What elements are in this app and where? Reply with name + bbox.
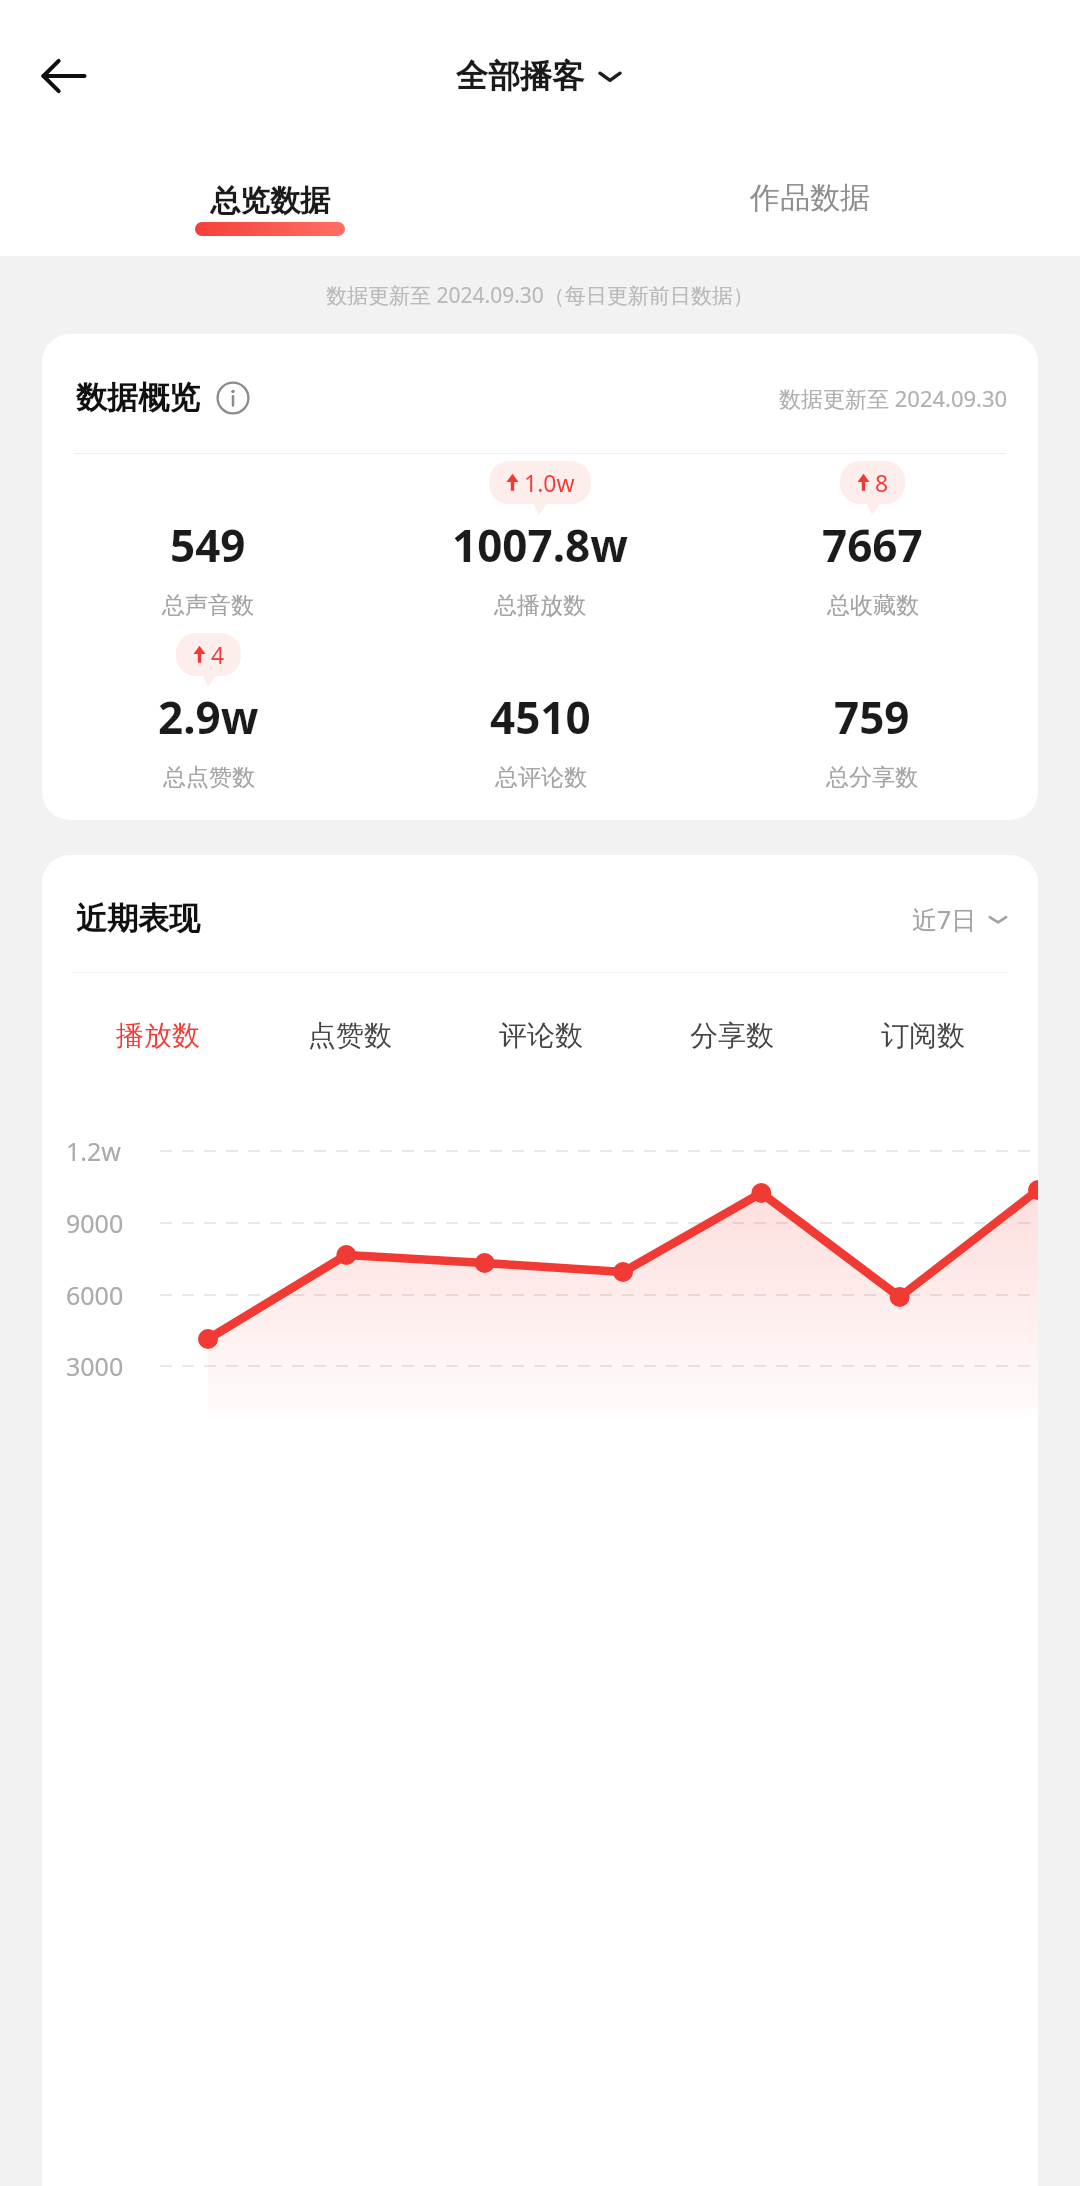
- staticText: 总点赞数: [163, 763, 255, 792]
- staticText: 数据概览: [76, 378, 200, 417]
- button[interactable]: 作品数据: [540, 152, 1080, 256]
- button[interactable]: 订阅数: [830, 997, 1015, 1073]
- staticText: 549: [170, 515, 246, 575]
- button[interactable]: Back: [26, 38, 102, 114]
- staticText: 4510: [490, 687, 591, 747]
- staticText: 1007.8w: [452, 515, 628, 575]
- staticText: 数据更新至 2024.09.30: [779, 383, 1008, 413]
- button[interactable]: Info: [216, 381, 250, 415]
- staticText: 759: [834, 687, 910, 747]
- staticText: 近期表现: [76, 899, 200, 938]
- button[interactable]: 评论数: [448, 997, 633, 1073]
- staticText: 4: [211, 639, 225, 670]
- staticText: 1.2w: [66, 1134, 121, 1168]
- staticText: 9000: [66, 1206, 124, 1240]
- staticText: 全部播客: [456, 56, 584, 96]
- staticText: 总分享数: [826, 763, 918, 792]
- staticText: 订阅数: [881, 1018, 965, 1053]
- button[interactable]: 点赞数: [257, 997, 442, 1073]
- staticText: 近7日: [912, 902, 977, 936]
- button[interactable]: 全部播客: [456, 56, 624, 96]
- button[interactable]: 近7日: [912, 902, 1010, 936]
- button[interactable]: 播放数: [65, 997, 251, 1073]
- staticText: 总览数据: [210, 182, 330, 220]
- staticText: 数据更新至 2024.09.30（每日更新前日数据）: [326, 281, 754, 310]
- staticText: 点赞数: [308, 1018, 392, 1053]
- button[interactable]: 总览数据: [0, 152, 540, 256]
- staticText: 1.0w: [524, 467, 575, 498]
- button[interactable]: 分享数: [639, 997, 824, 1073]
- staticText: 总声音数: [162, 591, 254, 620]
- staticText: 播放数: [116, 1018, 200, 1053]
- staticText: 7667: [822, 515, 923, 575]
- staticText: 作品数据: [750, 179, 870, 217]
- staticText: 评论数: [499, 1018, 583, 1053]
- staticText: 3000: [66, 1349, 124, 1383]
- staticText: 总播放数: [494, 591, 586, 620]
- staticText: 6000: [66, 1278, 124, 1312]
- staticText: 8: [875, 467, 889, 498]
- staticText: 2.9w: [158, 687, 259, 747]
- staticText: 总评论数: [495, 763, 587, 792]
- staticText: 总收藏数: [827, 591, 919, 620]
- staticText: 分享数: [690, 1018, 774, 1053]
